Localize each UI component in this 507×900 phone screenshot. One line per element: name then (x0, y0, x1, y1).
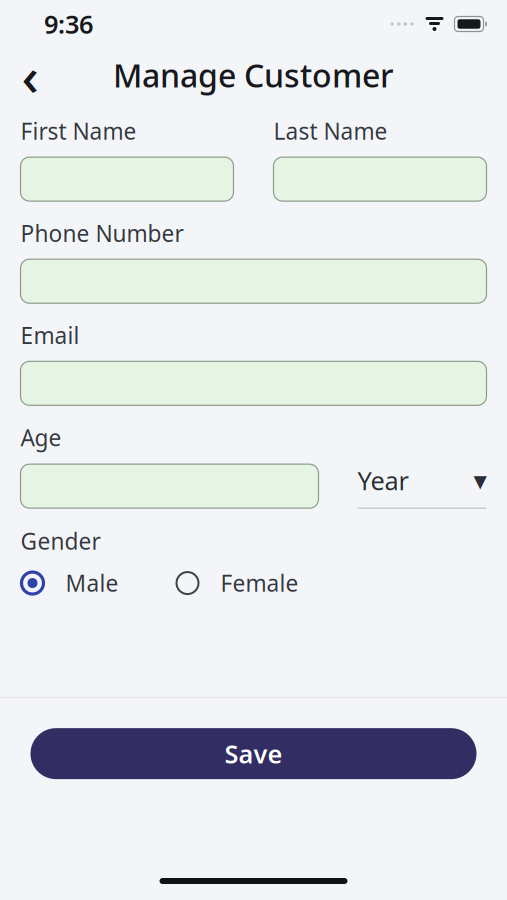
staticText: Phone Number (20, 218, 183, 248)
staticText: Last Name (273, 116, 387, 146)
staticText: First Name (20, 116, 136, 146)
staticText: ▾ (473, 465, 486, 496)
staticText: Save (224, 737, 282, 770)
staticText: Email (20, 320, 79, 350)
staticText: Year (357, 464, 408, 497)
button[interactable]: Year (357, 463, 486, 509)
staticText: ‹ (21, 40, 38, 110)
staticText: Male (65, 568, 118, 598)
staticText: Age (20, 422, 61, 452)
button[interactable]: Back (8, 53, 52, 97)
button[interactable]: Female (175, 568, 298, 598)
button[interactable]: Save (30, 728, 476, 779)
staticText: Gender (20, 526, 100, 556)
button[interactable]: Male (20, 568, 118, 598)
staticText: Manage Customer (113, 54, 394, 96)
staticText: Female (220, 568, 298, 598)
staticText: 9:36 (44, 7, 93, 41)
